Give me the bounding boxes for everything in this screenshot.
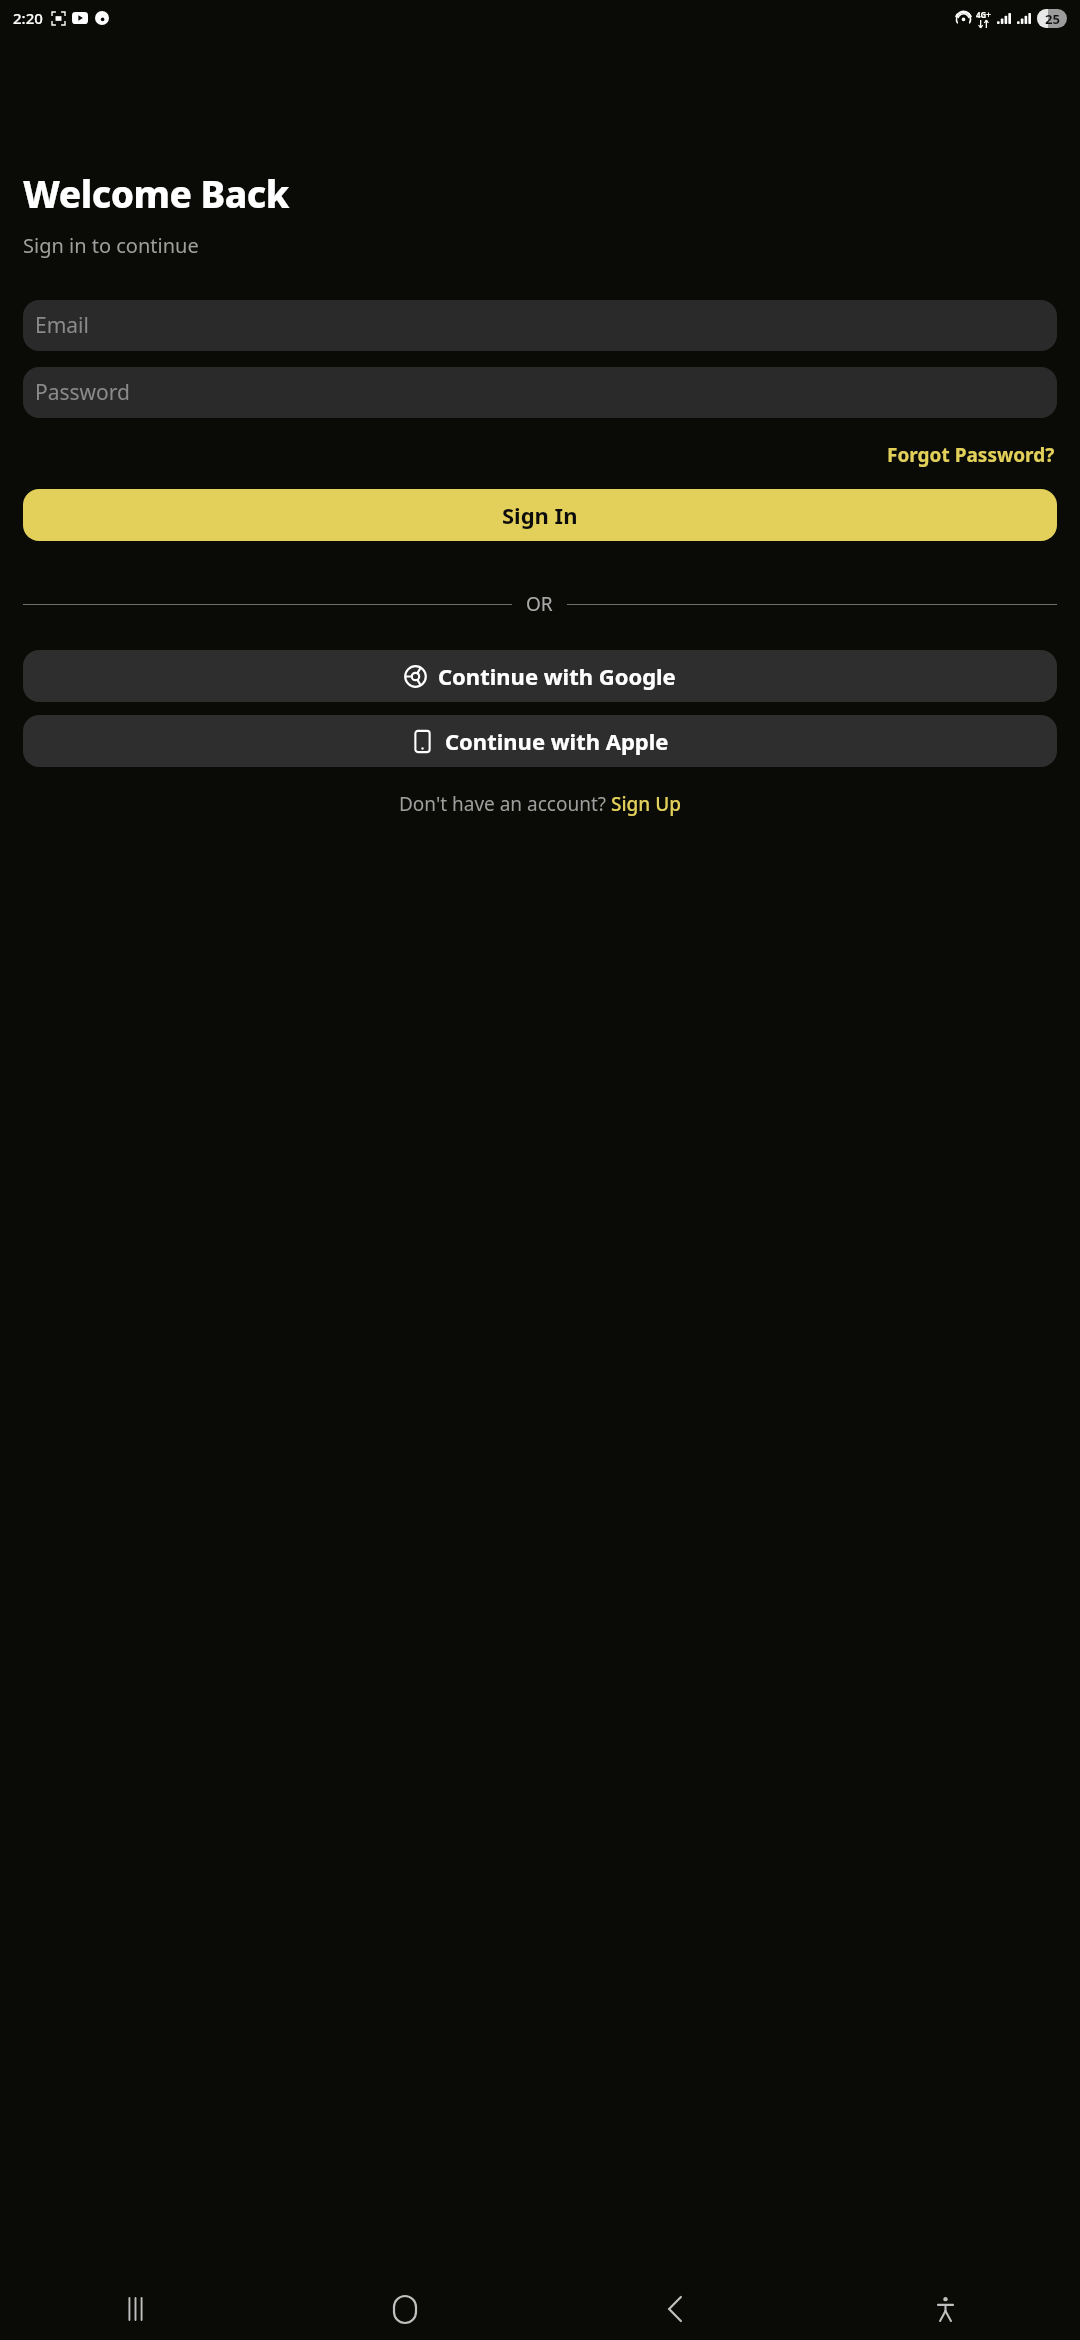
staticText: Continue with Apple <box>445 726 669 756</box>
button[interactable]: Accessibility <box>810 2278 1080 2340</box>
staticText: OR <box>526 591 553 617</box>
button[interactable]: Email <box>23 300 1057 351</box>
button[interactable]: Back <box>540 2278 810 2340</box>
button[interactable]: Recents <box>0 2278 270 2340</box>
staticText: Sign in to continue <box>23 232 199 259</box>
button[interactable]: Continue with Google <box>23 650 1057 702</box>
button[interactable]: Password <box>23 367 1057 418</box>
staticText: Email <box>35 311 89 340</box>
button[interactable]: Forgot Password? <box>885 438 1057 472</box>
staticText: Sign In <box>502 500 578 530</box>
button[interactable]: Sign Up <box>611 791 682 817</box>
staticText: 25 <box>1045 10 1060 28</box>
staticText: Password <box>35 378 130 407</box>
staticText: Sign Up <box>611 791 682 817</box>
staticText: Don't have an account? <box>399 791 611 817</box>
staticText: Forgot Password? <box>887 442 1055 468</box>
button[interactable]: Continue with Apple <box>23 715 1057 767</box>
staticText: 2:20 <box>13 8 43 28</box>
staticText: 4G+ <box>976 9 991 20</box>
staticText: Welcome Back <box>23 168 289 218</box>
button[interactable]: Home <box>270 2278 540 2340</box>
staticText: Continue with Google <box>438 661 676 691</box>
button[interactable]: Sign In <box>23 489 1057 541</box>
